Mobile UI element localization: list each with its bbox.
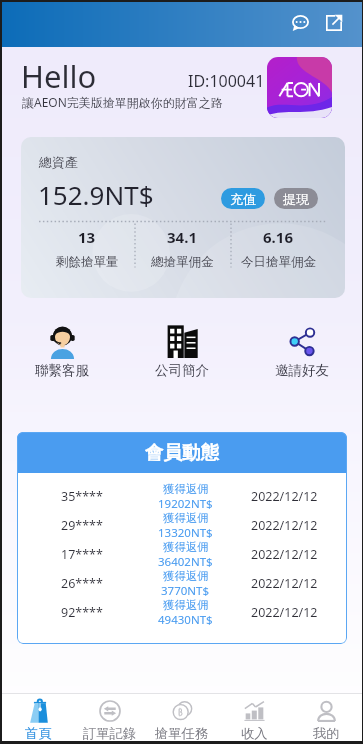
staticText: 92**** (61, 604, 103, 621)
staticText: 收入 (241, 725, 268, 741)
button[interactable]: 充值 (221, 188, 265, 209)
staticText: 充值 (230, 191, 256, 207)
staticText: ID:100041 (188, 70, 265, 92)
staticText: 邀請好友 (275, 362, 329, 379)
staticText: 讓AEON完美版搶單開啟你的財富之路 (22, 94, 223, 110)
staticText: 2022/12/12 (251, 604, 318, 621)
button[interactable]: 公司簡介 (122, 322, 242, 379)
staticText: 聯繫客服 (35, 362, 89, 379)
staticText: 獲得返佣 (163, 482, 209, 496)
staticText: 獲得返佣 (163, 511, 209, 525)
button[interactable]: 我的 (290, 694, 362, 741)
button[interactable]: 訂單記錄 (74, 694, 146, 741)
staticText: 34.1 (167, 227, 197, 247)
staticText: 提現 (283, 191, 309, 207)
staticText: 今日搶單佣金 (241, 254, 316, 270)
staticText: 35**** (61, 488, 103, 505)
staticText: 2022/12/12 (251, 517, 318, 534)
button[interactable]: 首頁 (2, 694, 74, 741)
staticText: 總資產 (39, 154, 78, 170)
button[interactable]: 邀請好友 (242, 322, 362, 379)
staticText: 剩餘搶單量 (56, 254, 119, 270)
staticText: 首頁 (25, 725, 52, 741)
staticText: 會員動態 (145, 441, 219, 464)
staticText: 3770NT$ (161, 583, 210, 598)
staticText: 152.9NT$ (38, 177, 154, 212)
staticText: 13 (78, 227, 96, 247)
staticText: 29**** (61, 517, 103, 534)
staticText: 6.16 (263, 227, 293, 247)
staticText: 2022/12/12 (251, 575, 318, 592)
staticText: 13320NT$ (158, 525, 213, 540)
staticText: 獲得返佣 (163, 540, 209, 554)
staticText: 獲得返佣 (163, 569, 209, 583)
staticText: 36402NT$ (158, 554, 213, 569)
staticText: 17**** (61, 546, 103, 563)
button[interactable]: Share (321, 10, 347, 36)
staticText: 2022/12/12 (251, 488, 318, 505)
staticText: 獲得返佣 (163, 598, 209, 612)
button[interactable]: 提現 (274, 188, 318, 209)
staticText: 總搶單佣金 (151, 254, 214, 270)
button[interactable]: Messages (287, 10, 313, 36)
staticText: 我的 (313, 725, 340, 741)
staticText: 26**** (61, 575, 103, 592)
staticText: 19202NT$ (158, 496, 213, 511)
button[interactable]: 聯繫客服 (2, 322, 122, 379)
button[interactable]: 收入 (218, 694, 290, 741)
staticText: 搶單任務 (155, 725, 209, 741)
staticText: Hello (21, 55, 97, 97)
staticText: 49430NT$ (158, 612, 213, 627)
staticText: 訂單記錄 (83, 725, 137, 741)
button[interactable]: 搶單任務 (146, 694, 218, 741)
staticText: 2022/12/12 (251, 546, 318, 563)
staticText: 公司簡介 (155, 362, 209, 379)
